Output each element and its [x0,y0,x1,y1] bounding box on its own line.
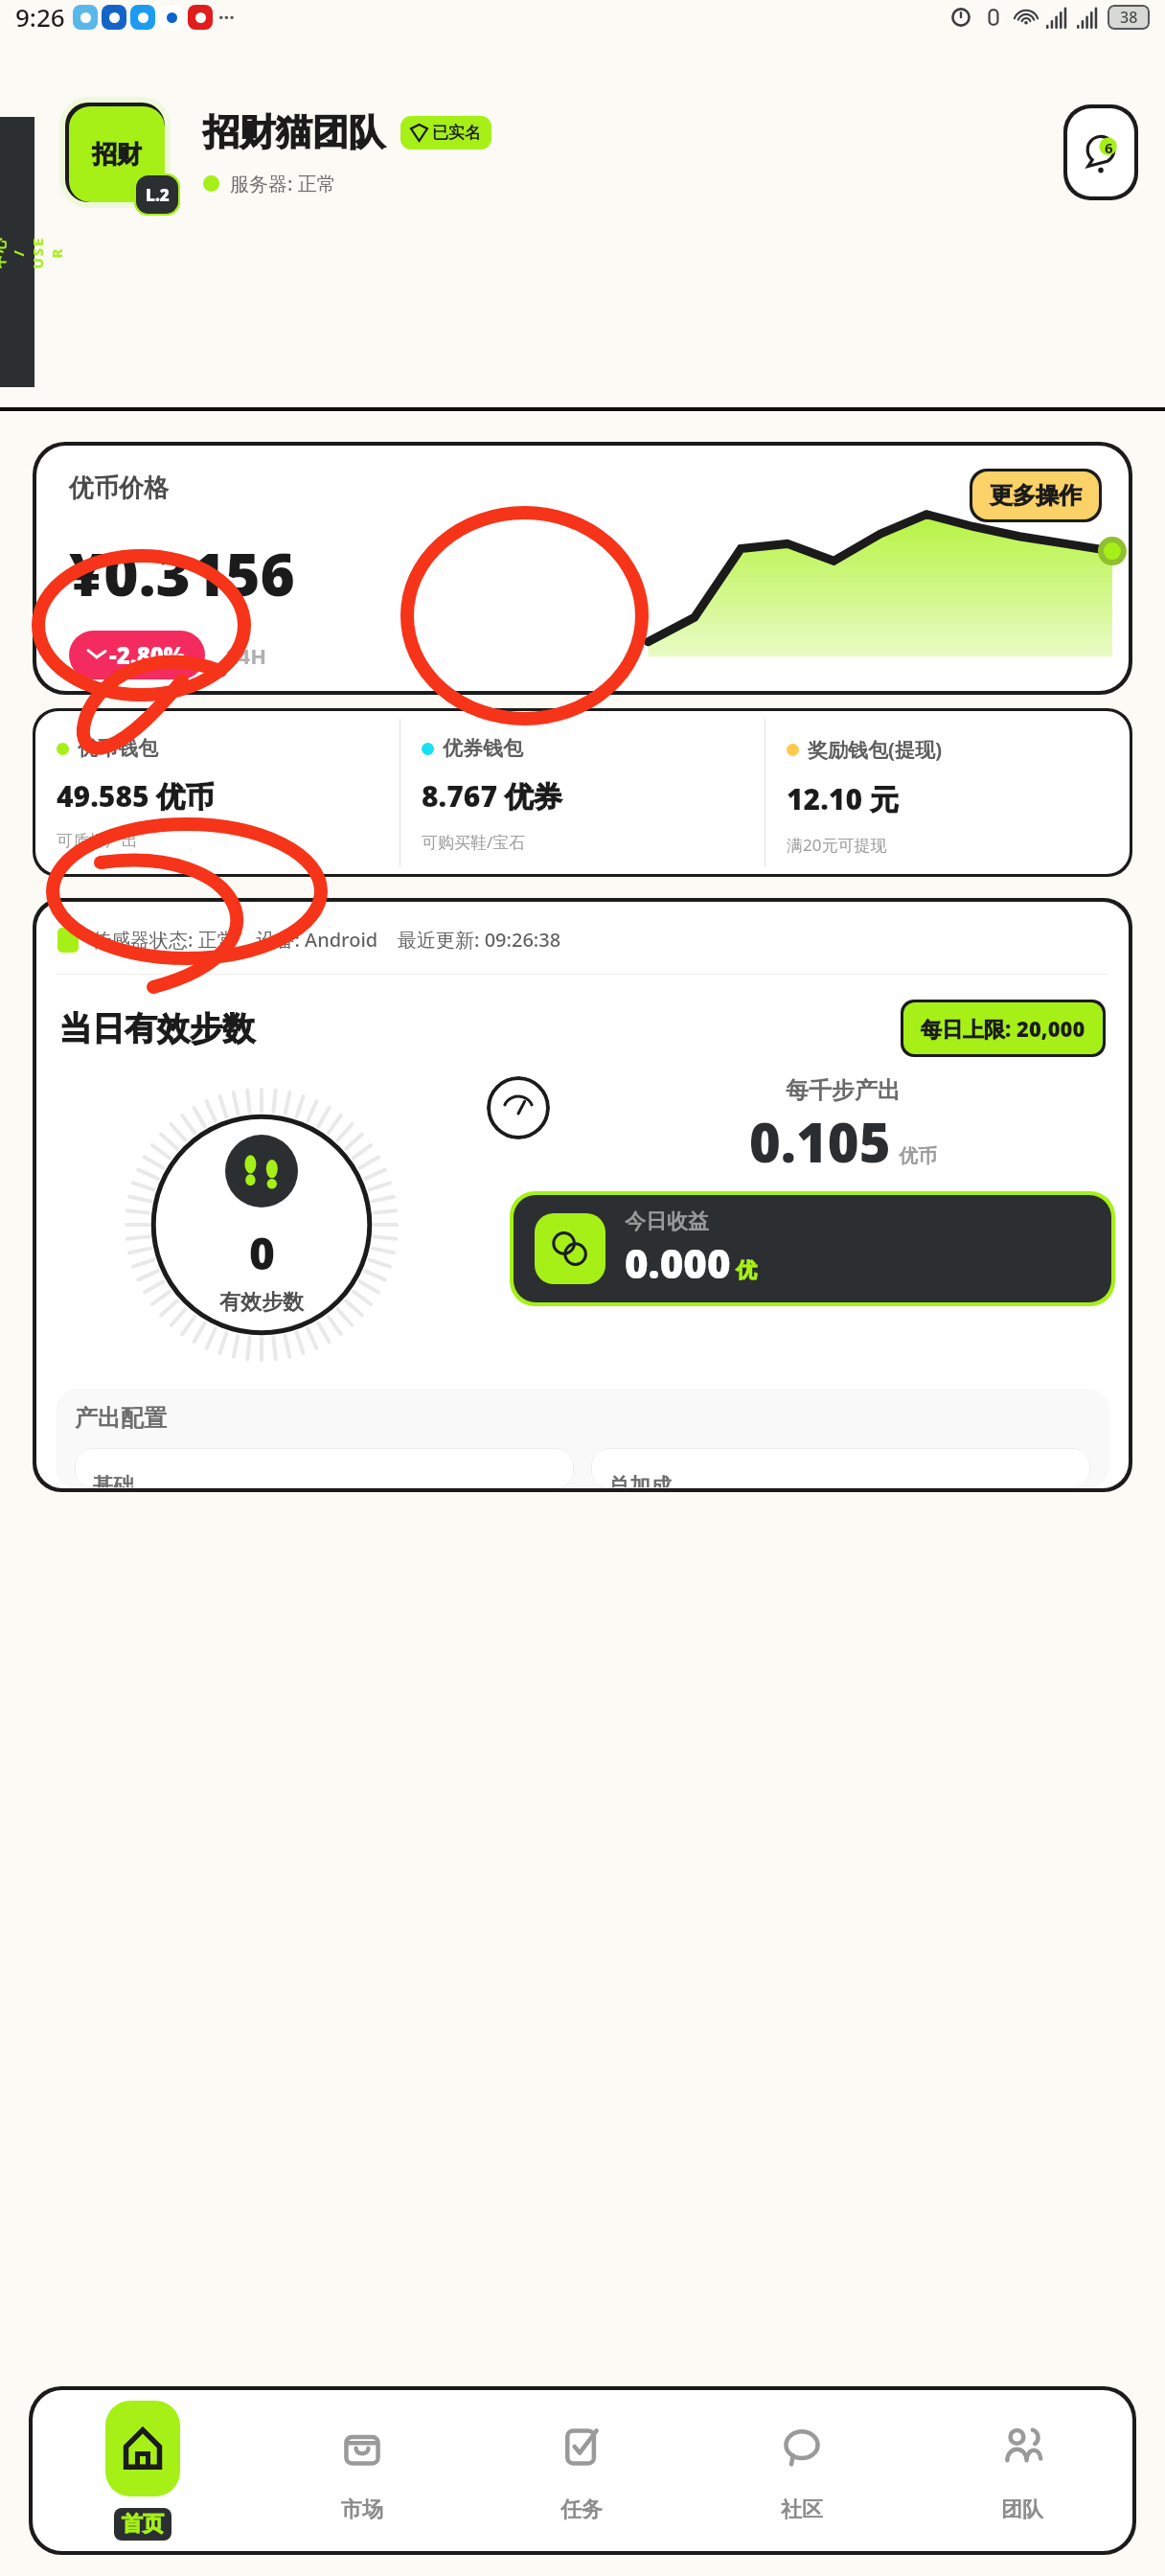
staticText: 8.767 优券 [422,776,562,816]
staticText: 可购买鞋/宝石 [422,831,526,853]
button[interactable]: 优币价格 [33,442,1132,695]
staticText: 今日收益 [625,1208,709,1235]
staticText: 总加成 [608,1473,672,1488]
staticText: 服务器: 正常 [230,171,336,196]
staticText: ··· [218,4,235,30]
button[interactable]: 每日上限: 20,000 [903,1002,1103,1054]
staticText: 优券钱包 [443,736,523,761]
staticText: 优币价格 [69,472,169,504]
staticText: 满20元可提现 [787,834,887,856]
staticText: 基础 [92,1473,134,1488]
button[interactable]: -2.80% [69,631,205,679]
staticText: 更多操作 [990,481,1082,510]
button[interactable]: 社区 [692,2390,912,2551]
staticText: 9:26 [15,0,65,34]
button[interactable]: 用户中心 [0,117,34,387]
staticText: 社区 [781,2496,823,2523]
button[interactable]: 通知 [1063,104,1138,200]
button[interactable]: 优券钱包 [400,711,765,874]
staticText: 当日有效步数 [59,1008,255,1049]
staticText: 24H [226,641,266,670]
staticText: 奖励钱包(提现) [808,736,943,764]
button[interactable]: 已实名 [400,116,491,149]
button[interactable]: 任务 [471,2390,692,2551]
button[interactable]: 优币钱包 [35,711,400,874]
staticText: 首页 [122,2511,164,2538]
staticText: 0 [249,1223,275,1283]
staticText: 优币 [899,1144,937,1168]
staticText: 6 [1105,138,1113,157]
staticText: -2.80% [109,639,186,671]
staticText: 有效步数 [219,1289,304,1316]
staticText: 可质押产出 [57,831,138,851]
staticText: 产出配置 [75,1404,167,1433]
staticText: 38 [1120,7,1138,28]
button[interactable]: 今日收益 [510,1191,1115,1306]
staticText: 用户中心 / USER [0,235,66,270]
staticText: 传感器状态: 正常 设备: Android 最近更新: 09:26:38 [92,927,561,953]
staticText: 市场 [341,2496,383,2523]
staticText: L.2 [146,184,170,206]
staticText: 招财 [92,139,142,171]
button[interactable]: 更多操作 [970,469,1102,522]
staticText: 招财猫团队 [203,109,385,155]
staticText: 已实名 [432,123,481,143]
staticText: 0.105 [749,1105,891,1178]
staticText: 优 [736,1257,757,1284]
button[interactable]: 团队 [912,2390,1132,2551]
staticText: 0.000 [625,1235,731,1290]
staticText: 每千步产出 [786,1076,901,1105]
staticText: 优币钱包 [78,736,158,761]
staticText: 12.10 元 [787,779,899,818]
button[interactable]: 总加成 [591,1448,1090,1488]
staticText: 每日上限: 20,000 [921,1014,1085,1043]
button[interactable]: 奖励钱包(提现) [765,711,1130,874]
button[interactable]: 基础 [75,1448,574,1488]
button[interactable]: 首页 [33,2390,252,2551]
staticText: ¥0.3156 [69,533,295,613]
staticText: 任务 [560,2496,603,2523]
staticText: 49.585 优币 [57,776,215,816]
button[interactable]: 市场 [252,2390,471,2551]
staticText: 团队 [1001,2496,1043,2523]
